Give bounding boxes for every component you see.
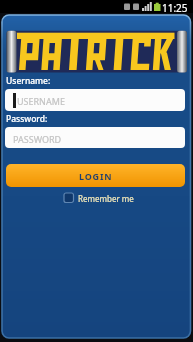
staticText: PASSWORD — [13, 133, 62, 145]
staticText: USERNAME — [17, 95, 65, 107]
staticText: Username: — [6, 75, 51, 87]
button[interactable]: LOGIN — [6, 164, 185, 187]
button[interactable]: PASSWORD — [5, 127, 185, 148]
staticText: 11:25 — [162, 1, 188, 15]
staticText: LOGIN — [79, 170, 113, 182]
button[interactable]: USERNAME — [5, 89, 185, 111]
staticText: Remember me — [78, 193, 134, 204]
button[interactable]: Remember me — [62, 191, 132, 204]
staticText: Password: — [6, 113, 48, 125]
